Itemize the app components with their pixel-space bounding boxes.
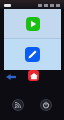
button[interactable]: Back <box>4 71 17 83</box>
button[interactable]: Power <box>40 99 52 111</box>
button[interactable]: Home <box>28 70 39 81</box>
other: Edit <box>25 47 40 62</box>
button[interactable]: Edit <box>4 39 61 70</box>
button[interactable]: Cast screen <box>12 99 24 111</box>
other: Play <box>26 17 40 31</box>
button[interactable]: Play <box>4 9 61 38</box>
